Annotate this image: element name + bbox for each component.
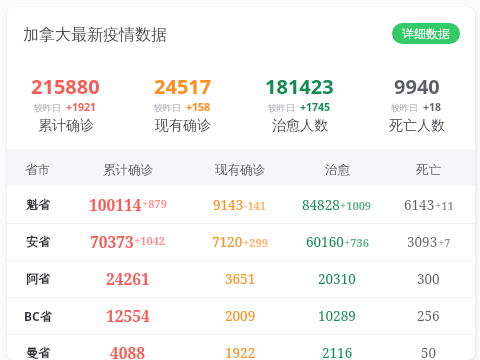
staticText: +11 bbox=[435, 198, 454, 213]
staticText: 魁省 bbox=[26, 197, 50, 212]
button[interactable]: 安省 bbox=[7, 223, 475, 260]
staticText: +299 bbox=[243, 235, 268, 250]
staticText: 死亡 bbox=[416, 162, 441, 178]
staticText: 256 bbox=[417, 307, 440, 325]
staticText: 12554 bbox=[106, 305, 150, 326]
staticText: -141 bbox=[244, 198, 267, 213]
staticText: 累计确诊 bbox=[38, 117, 94, 135]
staticText: 6143 bbox=[404, 196, 435, 214]
staticText: 300 bbox=[417, 270, 440, 288]
staticText: BC省 bbox=[24, 308, 52, 324]
button[interactable]: 9940 bbox=[358, 7, 475, 149]
button[interactable]: BC省 bbox=[7, 297, 475, 334]
staticText: 加拿大最新疫情数据 bbox=[23, 25, 167, 45]
staticText: 9940 bbox=[394, 73, 440, 100]
staticText: 2009 bbox=[225, 307, 256, 325]
staticText: 2116 bbox=[322, 344, 353, 360]
staticText: +158 bbox=[186, 100, 211, 114]
staticText: 50 bbox=[421, 344, 437, 360]
staticText: +1921 bbox=[66, 100, 97, 114]
button[interactable]: 181423 bbox=[241, 7, 358, 149]
staticText: +1009 bbox=[340, 198, 372, 213]
staticText: 60160 bbox=[306, 233, 344, 251]
staticText: 84828 bbox=[302, 196, 340, 214]
staticText: +736 bbox=[344, 235, 369, 250]
staticText: 较昨日 bbox=[268, 102, 295, 113]
staticText: 3093 bbox=[407, 233, 438, 251]
staticText: 较昨日 bbox=[154, 102, 181, 113]
staticText: 9143 bbox=[213, 196, 244, 214]
staticText: 215880 bbox=[31, 73, 100, 100]
staticText: 治愈 bbox=[325, 162, 350, 178]
button[interactable]: 详细数据 bbox=[392, 23, 460, 44]
staticText: 24261 bbox=[106, 268, 150, 289]
staticText: 7120 bbox=[212, 233, 243, 251]
staticText: 阿省 bbox=[26, 271, 50, 286]
staticText: 10289 bbox=[318, 307, 356, 325]
staticText: 现有确诊 bbox=[155, 117, 211, 135]
button[interactable]: 魁省 bbox=[7, 186, 475, 223]
staticText: 24517 bbox=[154, 73, 212, 100]
staticText: 治愈人数 bbox=[272, 117, 328, 135]
staticText: 181423 bbox=[265, 73, 334, 100]
staticText: 100114 bbox=[89, 194, 142, 215]
staticText: 20310 bbox=[318, 270, 356, 288]
staticText: 较昨日 bbox=[34, 102, 61, 113]
staticText: +879 bbox=[142, 196, 167, 211]
staticText: 累计确诊 bbox=[103, 162, 153, 178]
button[interactable]: 阿省 bbox=[7, 260, 475, 297]
button[interactable]: 24517 bbox=[124, 7, 241, 149]
staticText: 省市 bbox=[25, 162, 50, 178]
staticText: 安省 bbox=[26, 234, 50, 249]
staticText: 3651 bbox=[225, 270, 256, 288]
staticText: 现有确诊 bbox=[215, 162, 265, 178]
staticText: 较昨日 bbox=[391, 102, 418, 113]
staticText: 1922 bbox=[225, 344, 256, 360]
staticText: 4088 bbox=[110, 342, 146, 360]
button[interactable]: 215880 bbox=[7, 7, 124, 149]
button[interactable]: 曼省 bbox=[7, 334, 475, 360]
staticText: 曼省 bbox=[26, 345, 50, 360]
staticText: +1042 bbox=[134, 233, 166, 248]
staticText: 详细数据 bbox=[402, 26, 450, 41]
staticText: 死亡人数 bbox=[389, 117, 445, 135]
staticText: +1745 bbox=[300, 100, 331, 114]
staticText: +18 bbox=[423, 100, 442, 114]
staticText: 70373 bbox=[90, 231, 134, 252]
staticText: +7 bbox=[438, 235, 451, 250]
